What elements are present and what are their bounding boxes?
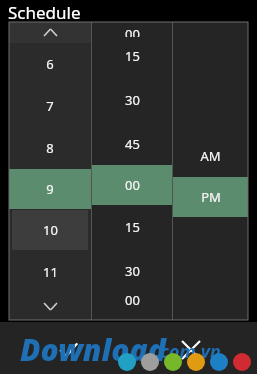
button[interactable]: 00 [92,165,172,205]
button[interactable]: 9 [9,169,91,209]
staticText: 6 [46,55,54,73]
staticText: 10 [43,221,58,239]
button[interactable]: 8 [9,127,91,169]
staticText: 30 [125,91,140,109]
staticText: 8 [46,139,54,157]
button[interactable]: 45 [92,122,172,165]
button[interactable]: PM [173,177,248,217]
button[interactable]: 7 [9,85,91,127]
button[interactable]: 30 [92,249,172,293]
button[interactable]: 15 [92,34,172,78]
staticText: 11 [43,263,58,281]
button[interactable]: 30 [92,78,172,122]
button[interactable]: 15 [92,205,172,249]
staticText: 15 [125,218,140,236]
staticText: Download [20,329,166,370]
staticText: 00 [125,25,140,37]
staticText: 00 [125,291,140,309]
button[interactable]: Cancel [167,326,215,374]
staticText: PM [201,188,221,206]
button[interactable]: 6 [9,43,91,85]
staticText: 7 [46,97,54,115]
button[interactable]: Scroll down [9,293,91,320]
staticText: 30 [125,262,140,280]
staticText: .com.vn [155,339,221,364]
button[interactable]: AM [173,135,248,177]
staticText: AM [200,147,221,165]
button[interactable]: 11 [9,251,91,293]
button[interactable]: Accept [44,326,92,374]
button[interactable]: Scroll up [9,22,91,43]
staticText: 15 [125,47,140,65]
staticText: 00 [125,176,140,194]
button[interactable]: 10 [12,210,88,250]
staticText: 9 [46,180,54,198]
staticText: Schedule [8,1,81,24]
staticText: 45 [125,135,140,153]
